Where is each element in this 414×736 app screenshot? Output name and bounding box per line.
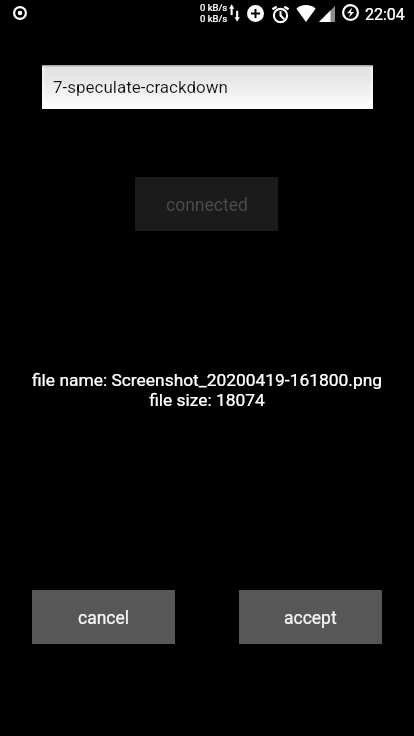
- staticText: 0 kB/s: [200, 2, 228, 13]
- staticText: cancel: [78, 608, 130, 629]
- other: Wi-Fi: [296, 5, 316, 22]
- other: Network traffic: [229, 4, 240, 22]
- other: Battery charging: [342, 4, 359, 21]
- button[interactable]: connected: [135, 177, 278, 231]
- staticText: 22:04: [365, 5, 405, 24]
- staticText: connected: [166, 195, 248, 216]
- other: Screen recording: [13, 6, 27, 20]
- other: Alarm: [270, 3, 291, 24]
- button[interactable]: 7-speculate-crackdown: [42, 65, 373, 109]
- staticText: file name: Screenshot_20200419-161800.pn…: [0, 370, 414, 736]
- staticText: accept: [284, 608, 337, 629]
- button[interactable]: accept: [239, 590, 382, 644]
- staticText: 7-speculate-crackdown: [53, 77, 228, 97]
- staticText: 0 kB/s: [200, 13, 228, 24]
- other: Mobile signal: [319, 6, 335, 22]
- other: Add: [247, 5, 264, 22]
- button[interactable]: cancel: [32, 590, 175, 644]
